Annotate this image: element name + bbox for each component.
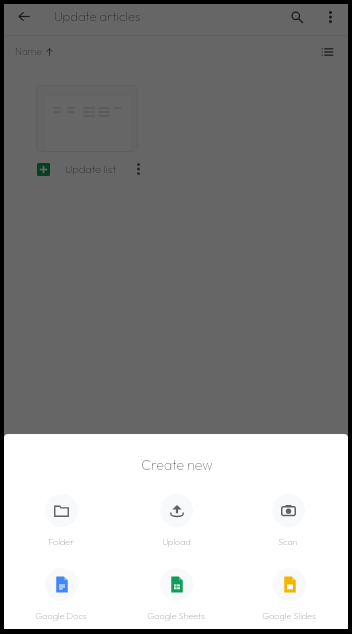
button[interactable]: More options	[318, 4, 343, 29]
staticText: Create new	[5, 456, 348, 474]
staticText: Upload	[162, 536, 191, 547]
staticText: Update list	[65, 162, 117, 176]
staticText: Google Slides	[262, 610, 316, 621]
button[interactable]: Search	[284, 4, 309, 29]
button[interactable]: Back	[11, 4, 36, 29]
button[interactable]: Google Slides	[232, 568, 346, 621]
staticText: Folder	[48, 536, 74, 547]
button[interactable]: Update list	[36, 155, 145, 183]
staticText: Name	[15, 45, 42, 58]
other: File options	[131, 162, 145, 176]
button[interactable]: Folder	[4, 494, 118, 547]
staticText: Google Docs	[35, 610, 87, 621]
button[interactable]: Upload	[119, 494, 233, 547]
staticText: Scan	[278, 536, 298, 547]
button[interactable]: Name	[11, 42, 57, 61]
button[interactable]: Scan	[231, 494, 345, 547]
button[interactable]: Switch to list view	[315, 40, 339, 64]
staticText: Google Sheets	[147, 610, 205, 621]
button[interactable]: Google Sheets	[119, 568, 233, 621]
staticText: Update articles	[54, 8, 141, 24]
button[interactable]: Google Docs	[4, 568, 118, 621]
